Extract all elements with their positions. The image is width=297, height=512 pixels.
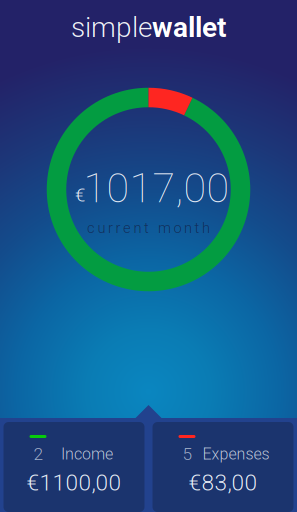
staticText: Expenses bbox=[202, 445, 269, 464]
staticText: simple bbox=[71, 11, 152, 44]
staticText: € bbox=[75, 184, 85, 206]
button[interactable]: Income details bbox=[3, 422, 144, 512]
staticText: 1017,00 bbox=[83, 164, 229, 212]
staticText: current month bbox=[87, 219, 210, 237]
staticText: wallet bbox=[152, 11, 226, 44]
staticText: 2 bbox=[33, 444, 43, 464]
staticText: Income bbox=[61, 445, 113, 464]
staticText: €1100,00 bbox=[26, 469, 121, 496]
staticText: 5 bbox=[182, 444, 192, 464]
staticText: €83,00 bbox=[188, 469, 257, 496]
button[interactable]: Expenses details bbox=[152, 422, 293, 512]
